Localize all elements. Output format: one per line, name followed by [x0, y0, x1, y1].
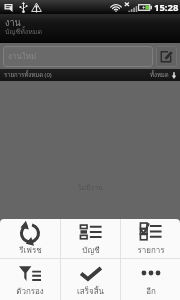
staticText: บัญชีทั้งหมด — [5, 26, 42, 37]
button[interactable]: รายการ — [121, 219, 180, 258]
button[interactable]: บัญชี — [61, 219, 120, 258]
button[interactable]: อีก — [121, 259, 180, 300]
staticText: ทั้งหมด — [150, 70, 169, 80]
button[interactable]: รีเฟรช — [0, 219, 60, 258]
staticText: ไม่มีงาน — [78, 182, 103, 193]
staticText: เสร็จสิ้น — [77, 285, 104, 298]
button[interactable]: เสร็จสิ้น — [61, 259, 120, 300]
button[interactable]: ตัวกรอง — [0, 259, 60, 300]
staticText: งานใหม่ — [8, 50, 37, 63]
staticText: อีก — [146, 285, 156, 298]
staticText: งาน — [5, 16, 21, 30]
staticText: ตัวกรอง — [16, 285, 44, 298]
button[interactable]: งานใหม่ — [3, 46, 153, 67]
staticText: บัญชี — [82, 244, 100, 257]
staticText: รีเฟรช — [19, 244, 42, 257]
button[interactable]: ทั้งหมด — [150, 70, 177, 80]
staticText: 15:28 — [154, 1, 179, 14]
staticText: รายการ — [137, 244, 165, 257]
button[interactable]: New task — [156, 46, 177, 67]
staticText: รายการทั้งหมด (0) — [4, 70, 52, 80]
